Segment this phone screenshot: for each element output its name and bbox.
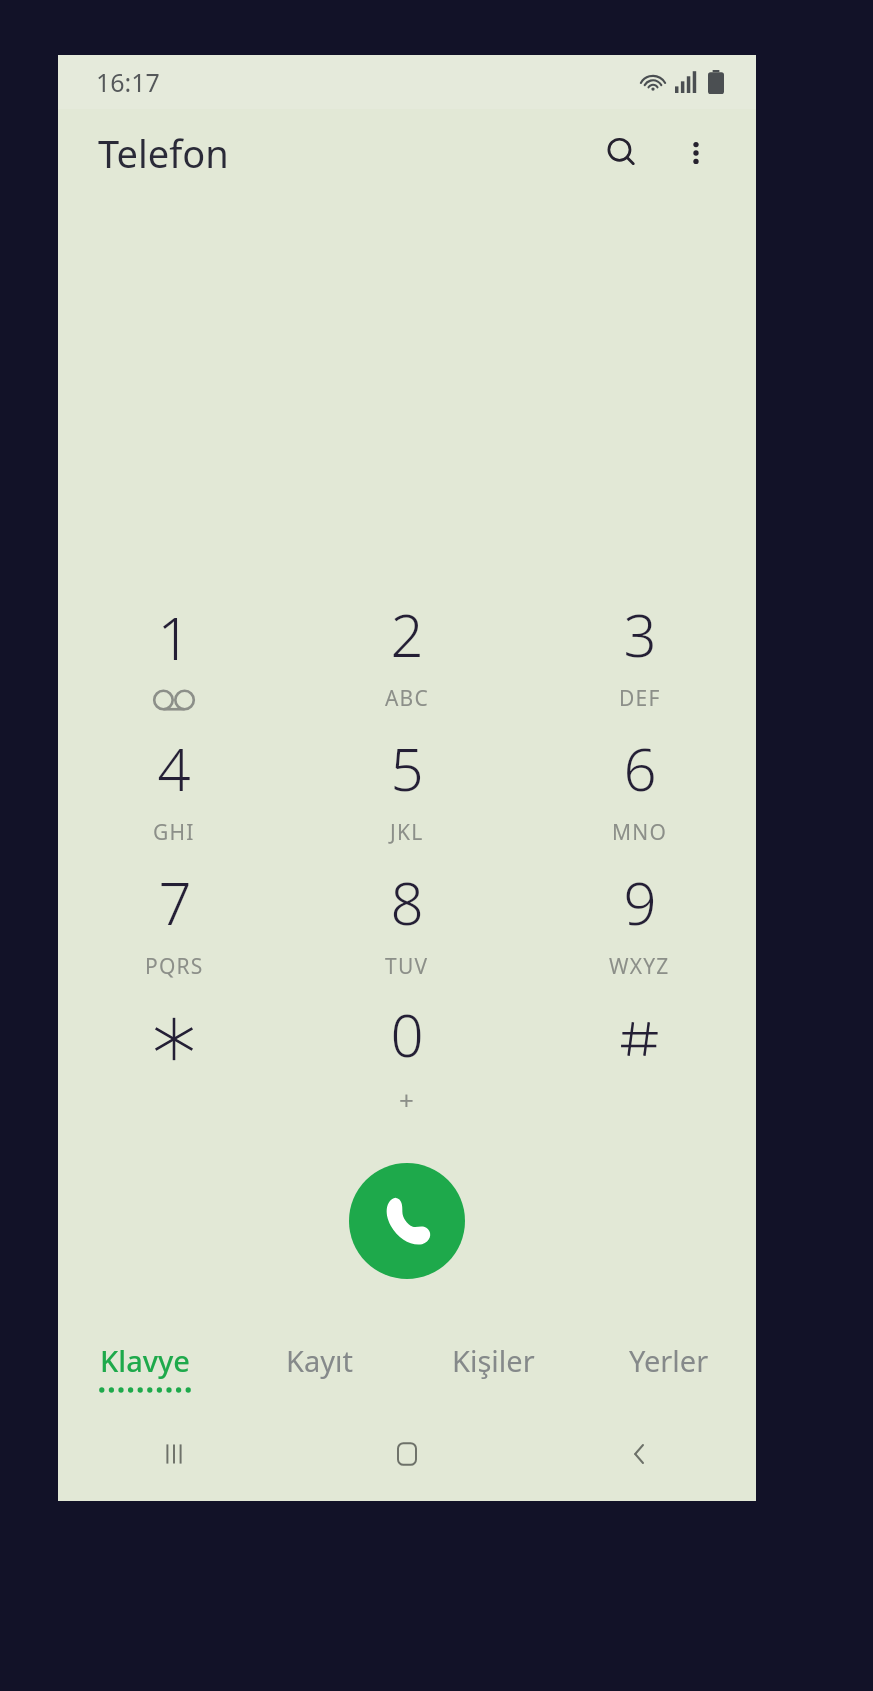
- button[interactable]: 1: [58, 587, 290, 721]
- staticText: DEF: [619, 684, 661, 713]
- staticText: 0: [390, 995, 424, 1074]
- staticText: 3: [623, 595, 657, 674]
- staticText: WXYZ: [609, 952, 670, 981]
- staticText: 16:17: [96, 65, 160, 99]
- button[interactable]: Home: [290, 1423, 523, 1485]
- staticText: Klavye: [100, 1341, 190, 1380]
- button[interactable]: 6: [523, 721, 756, 855]
- button[interactable]: 3: [523, 587, 756, 721]
- button[interactable]: 7: [58, 855, 290, 989]
- staticText: Telefon: [98, 127, 229, 179]
- button[interactable]: 2: [290, 587, 523, 721]
- button[interactable]: Back: [523, 1423, 756, 1485]
- staticText: Yerler: [629, 1341, 709, 1380]
- button[interactable]: Call: [349, 1163, 465, 1279]
- button[interactable]: 5: [290, 721, 523, 855]
- button[interactable]: Recents: [58, 1423, 290, 1485]
- staticText: PQRS: [145, 952, 204, 981]
- button[interactable]: 0: [290, 989, 523, 1123]
- staticText: JKL: [390, 818, 424, 847]
- staticText: 6: [623, 729, 657, 808]
- staticText: ABC: [385, 684, 429, 713]
- staticText: 1: [157, 598, 191, 677]
- button[interactable]: More options: [664, 121, 728, 185]
- staticText: 8: [390, 863, 424, 942]
- button[interactable]: Yerler: [581, 1341, 756, 1380]
- button[interactable]: Kişiler: [406, 1341, 581, 1380]
- button[interactable]: Search: [590, 121, 654, 185]
- staticText: 9: [623, 863, 657, 942]
- staticText: 7: [158, 863, 192, 942]
- staticText: Kayıt: [286, 1341, 353, 1380]
- staticText: 4: [157, 729, 191, 808]
- button[interactable]: 9: [523, 855, 756, 989]
- button[interactable]: [523, 989, 756, 1123]
- button[interactable]: [58, 989, 290, 1123]
- staticText: 5: [390, 729, 424, 808]
- staticText: MNO: [612, 818, 668, 847]
- staticText: GHI: [153, 818, 195, 847]
- button[interactable]: Klavye: [58, 1341, 232, 1393]
- staticText: +: [399, 1082, 416, 1117]
- staticText: 2: [390, 595, 424, 674]
- button[interactable]: 4: [58, 721, 290, 855]
- staticText: Kişiler: [452, 1341, 535, 1380]
- button[interactable]: 8: [290, 855, 523, 989]
- button[interactable]: Kayıt: [232, 1341, 406, 1380]
- staticText: TUV: [385, 952, 429, 981]
